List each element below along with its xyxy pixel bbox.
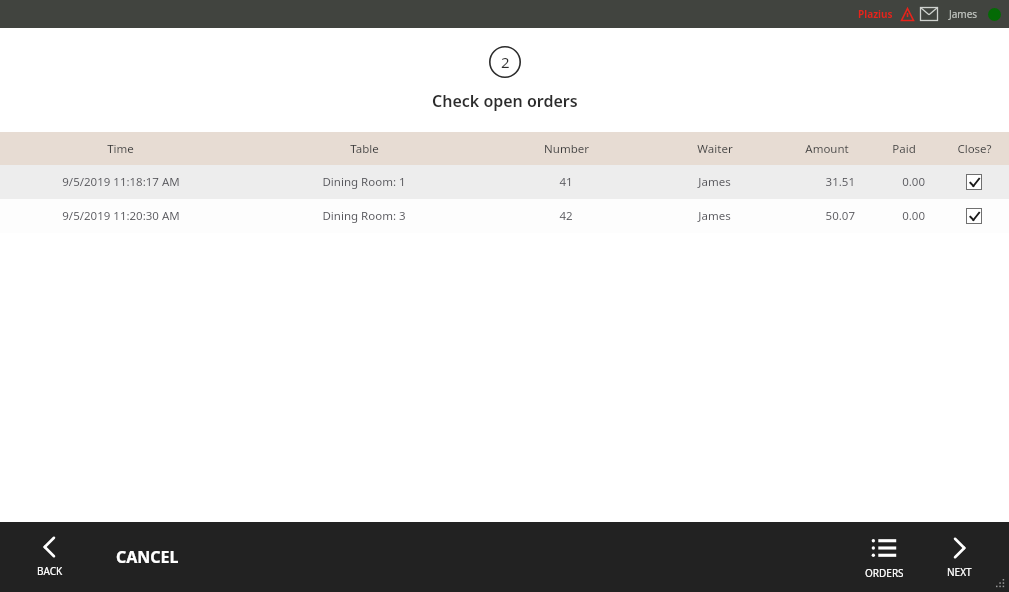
staticText: 0.00 [902,174,925,190]
button[interactable]: Close order [966,208,982,224]
staticText: CANCEL [116,546,179,568]
button[interactable]: 9/5/2019 11:20:30 AM [0,199,1009,233]
staticText: NEXT [947,565,972,579]
button[interactable]: 9/5/2019 11:18:17 AM [0,165,1009,199]
staticText: Amount [805,141,849,157]
staticText: James [949,7,978,21]
staticText: 31.51 [825,174,855,190]
staticText: ORDERS [865,566,904,580]
button[interactable]: BACK [22,536,78,578]
staticText: 0.00 [902,208,925,224]
staticText: Check open orders [432,90,578,112]
button[interactable]: Warnings [899,6,915,22]
staticText: Paid [892,141,916,157]
staticText: 50.07 [825,208,855,224]
staticText: Table [350,141,379,157]
staticText: Number [544,141,589,157]
button[interactable]: Connection status [988,8,1001,21]
button[interactable]: ORDERS [851,535,917,580]
button[interactable]: CANCEL [116,546,179,568]
staticText: BACK [37,564,63,578]
staticText: Dining Room: 3 [322,208,406,224]
button[interactable]: Close order [966,174,982,190]
button[interactable]: NEXT [931,537,987,579]
staticText: 2 [501,52,510,72]
staticText: 9/5/2019 11:20:30 AM [62,208,180,224]
staticText: Close? [957,141,992,157]
staticText: James [698,208,731,224]
staticText: Waiter [697,141,733,157]
staticText: Plazius [858,7,893,21]
staticText: Time [107,141,134,157]
button[interactable]: Messages [919,4,939,24]
staticText: James [698,174,731,190]
staticText: 41 [559,174,573,190]
staticText: Dining Room: 1 [322,174,406,190]
staticText: 9/5/2019 11:18:17 AM [62,174,180,190]
staticText: 42 [559,208,573,224]
